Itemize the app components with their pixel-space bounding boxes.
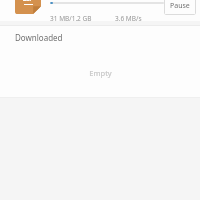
other: ZIP file [15,0,41,14]
staticText: ZIP [23,0,34,3]
button[interactable]: Pause [164,0,196,15]
button[interactable]: ZIP file [0,0,200,21]
staticText: 31 MB/1.2 GB [50,14,92,21]
staticText: Downloaded [15,32,63,43]
staticText: Empty [89,68,112,78]
button[interactable]: Downloaded [0,26,200,48]
staticText: Pause [170,1,190,11]
staticText: 3.6 MB/s [115,14,142,21]
